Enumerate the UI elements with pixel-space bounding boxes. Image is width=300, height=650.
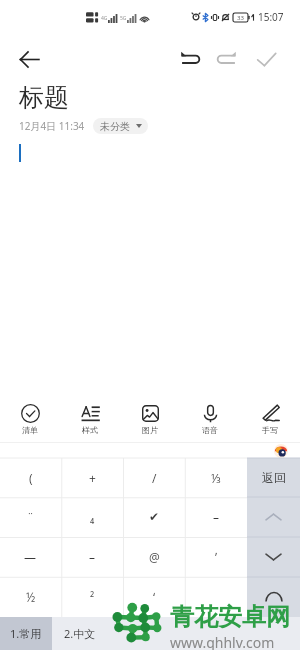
staticText: ² [90, 589, 95, 605]
button[interactable]: Hide keyboard [247, 577, 300, 617]
button[interactable]: ʼ [185, 537, 247, 577]
button[interactable]: + [61, 458, 123, 497]
staticText: ✔ [149, 510, 160, 524]
staticText: 手写 [262, 425, 278, 435]
button[interactable]: Page down [247, 537, 300, 577]
button[interactable]: 未分类 [93, 118, 148, 134]
staticText: 标题 [19, 82, 69, 113]
staticText: ⅓ [211, 470, 221, 486]
staticText: 15:07 [258, 10, 284, 24]
staticText: 5G [120, 15, 127, 22]
staticText: / [152, 470, 157, 486]
staticText: 青花安卓网 [170, 602, 290, 632]
button[interactable]: 清单 [0, 395, 60, 442]
button[interactable]: Return [247, 458, 300, 497]
staticText: 33 [237, 14, 244, 22]
button[interactable] [185, 577, 247, 617]
button[interactable]: 语音 [180, 395, 240, 442]
staticText: 图片 [142, 425, 158, 435]
button[interactable]: Done [249, 42, 283, 76]
staticText: www.qhhlv.com [170, 633, 275, 650]
staticText: 12月4日 11:34 [19, 119, 85, 133]
button[interactable]: ✔ [123, 497, 185, 537]
staticText: – [89, 549, 96, 565]
button[interactable]: 1.常用 [0, 617, 52, 650]
button[interactable]: ₄ [61, 497, 123, 537]
staticText: ʻ [153, 589, 156, 605]
staticText: 1.常用 [10, 626, 42, 641]
staticText: ¨ [27, 509, 34, 525]
staticText: ʼ [215, 549, 218, 565]
staticText: ₄ [90, 509, 95, 525]
button[interactable]: – [61, 537, 123, 577]
staticText: ½ [26, 589, 36, 605]
staticText: – [213, 509, 220, 525]
button[interactable]: Back [9, 39, 49, 79]
staticText: + [89, 470, 96, 486]
staticText: @ [149, 549, 160, 565]
button[interactable]: – [185, 497, 247, 537]
button[interactable]: — [0, 537, 61, 577]
staticText: ( [29, 470, 33, 486]
button[interactable]: 2.中文 [52, 617, 108, 650]
staticText: — [24, 549, 37, 565]
button[interactable]: ¨ [0, 497, 61, 537]
button[interactable]: 样式 [60, 395, 120, 442]
staticText: 4G [101, 15, 108, 22]
button[interactable]: @ [123, 537, 185, 577]
staticText: 未分类 [100, 120, 130, 133]
staticText: 语音 [202, 425, 218, 435]
button[interactable]: / [123, 458, 185, 497]
staticText: 2.中文 [64, 626, 96, 641]
staticText: 清单 [22, 425, 38, 435]
staticText: 返回 [262, 470, 286, 485]
button[interactable]: 图片 [120, 395, 180, 442]
button[interactable]: 手写 [240, 395, 300, 442]
button[interactable]: ʻ [123, 577, 185, 617]
button[interactable]: ⅓ [185, 458, 247, 497]
button[interactable]: ² [61, 577, 123, 617]
staticText: 样式 [82, 425, 98, 435]
button[interactable]: Undo [173, 42, 207, 76]
button[interactable]: Page up [247, 497, 300, 537]
button[interactable]: Redo [209, 42, 243, 76]
button[interactable]: ½ [0, 577, 61, 617]
button[interactable]: ( [0, 458, 61, 497]
